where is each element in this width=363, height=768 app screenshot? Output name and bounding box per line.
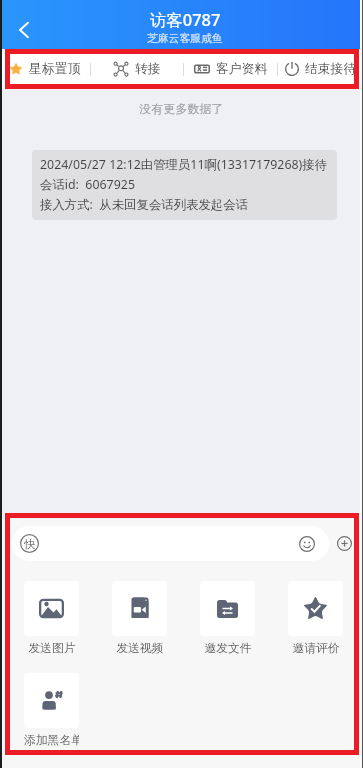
staticText: 访客0787 [150, 8, 221, 30]
button[interactable]: 发送视频 [112, 581, 167, 656]
staticText: 2024/05/27 12:12由管理员11啊(13317179268)接待 [40, 156, 328, 173]
staticText: 邀请评价 [292, 641, 340, 656]
staticText: 发送视频 [116, 641, 164, 656]
button[interactable]: 客户资料 [184, 49, 277, 89]
button[interactable]: 发送图片 [24, 581, 79, 656]
staticText: 星标置顶 [29, 61, 81, 77]
button[interactable] [12, 526, 329, 561]
button[interactable]: 星标置顶 [0, 49, 90, 89]
staticText: 转接 [135, 61, 161, 77]
button[interactable]: 结束接待 [278, 49, 363, 89]
button[interactable]: 转接 [91, 49, 183, 89]
staticText: 会话id: 6067925 [40, 176, 135, 193]
button[interactable]: 邀请评价 [288, 581, 343, 656]
button[interactable]: Back [6, 12, 42, 48]
staticText: 添加黑名单 [24, 733, 79, 748]
staticText: 没有更多数据了 [0, 101, 363, 116]
button[interactable]: Emoji [299, 536, 315, 552]
button[interactable]: 添加黑名单 [24, 673, 79, 748]
staticText: 接入方式: 从未回复会话列表发起会话 [40, 196, 249, 213]
staticText: 结束接待 [305, 61, 357, 77]
button[interactable]: Quick reply [20, 534, 39, 553]
staticText: 快 [24, 537, 35, 551]
button[interactable]: 邀发文件 [200, 581, 255, 656]
staticText: 客户资料 [216, 61, 268, 77]
staticText: 邀发文件 [204, 641, 252, 656]
staticText: 发送图片 [28, 641, 76, 656]
button[interactable]: More actions [337, 536, 352, 551]
staticText: 芝麻云客服咸鱼 [147, 32, 223, 46]
